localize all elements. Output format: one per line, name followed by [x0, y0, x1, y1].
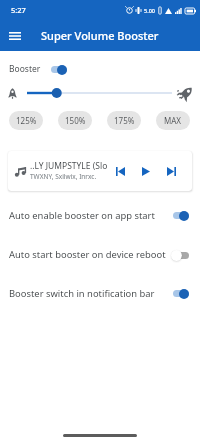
staticText: MAX: [164, 115, 182, 126]
button[interactable]: Next track: [159, 156, 183, 186]
staticText: Auto start booster on device reboot: [9, 248, 173, 261]
staticText: 5.00: [144, 7, 155, 14]
staticText: 5:27: [11, 5, 26, 15]
button[interactable]: 125%: [9, 111, 43, 130]
staticText: 175%: [114, 115, 135, 126]
staticText: ..LY JUMPSTYLE (Slo: [30, 160, 107, 172]
staticText: 125%: [16, 115, 37, 126]
staticText: Booster switch in notification bar: [9, 287, 173, 300]
button[interactable]: 175%: [107, 111, 141, 130]
button[interactable]: Auto enable booster on app start: [0, 196, 200, 235]
button[interactable]: Auto start booster on device reboot: [0, 235, 200, 274]
button[interactable]: Previous track: [107, 156, 133, 186]
button[interactable]: Open navigation menu: [0, 21, 30, 51]
button[interactable]: 150%: [58, 111, 92, 130]
staticText: Super Volume Booster: [41, 28, 159, 43]
button[interactable]: Booster: [0, 57, 200, 81]
staticText: Booster: [9, 63, 41, 75]
staticText: 150%: [65, 115, 86, 126]
button[interactable]: Play: [133, 156, 159, 186]
staticText: Auto enable booster on app start: [9, 209, 173, 222]
staticText: TWXNY, Sxilwix, Inrxc.: [30, 172, 97, 181]
button[interactable]: MAX: [156, 111, 190, 130]
button[interactable]: Booster switch in notification bar: [0, 274, 200, 313]
button[interactable]: ..LY JUMPSTYLE (Slo: [8, 151, 192, 191]
